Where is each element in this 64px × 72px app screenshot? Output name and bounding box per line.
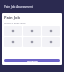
button[interactable] xyxy=(4,37,22,47)
button[interactable] xyxy=(42,26,60,36)
staticText: Continue xyxy=(27,59,38,62)
button[interactable]: Continue xyxy=(4,59,60,62)
staticText: Select a body area xyxy=(4,21,26,24)
button[interactable] xyxy=(42,37,60,47)
button[interactable] xyxy=(4,26,22,36)
staticText: Pain Job Assessment xyxy=(4,5,33,9)
button[interactable] xyxy=(23,26,41,36)
staticText: Pain Job xyxy=(4,15,21,20)
button[interactable] xyxy=(23,37,41,47)
